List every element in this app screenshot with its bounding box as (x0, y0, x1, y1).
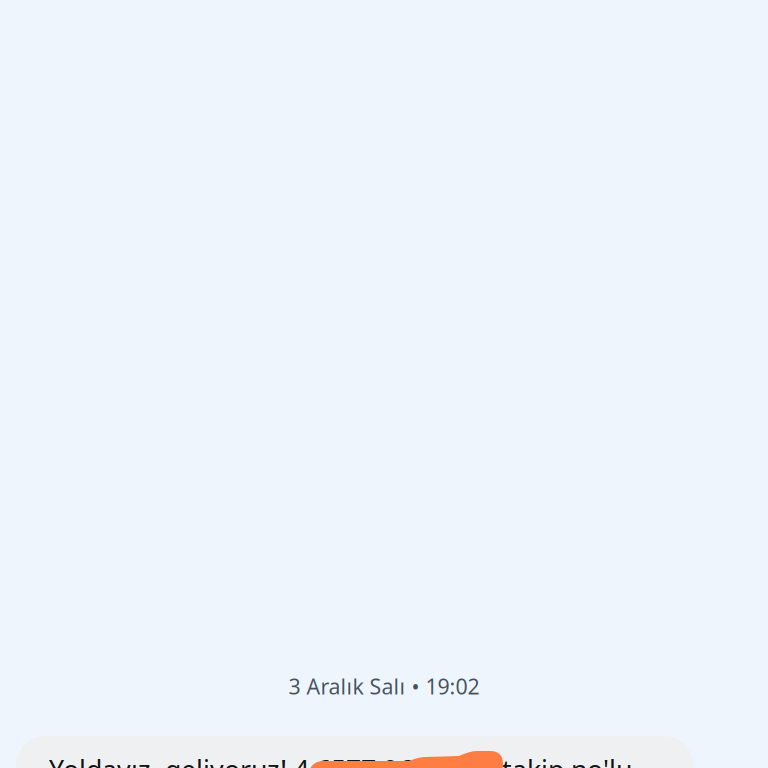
staticText: Yoldayız, geliyoruz! 4 6577 9632 444 tak… (49, 752, 632, 768)
button[interactable]: Yoldayız, geliyoruz! 4 6577 9632 444 tak… (16, 736, 693, 768)
staticText: 3 Aralık Salı • 19:02 (288, 672, 479, 700)
